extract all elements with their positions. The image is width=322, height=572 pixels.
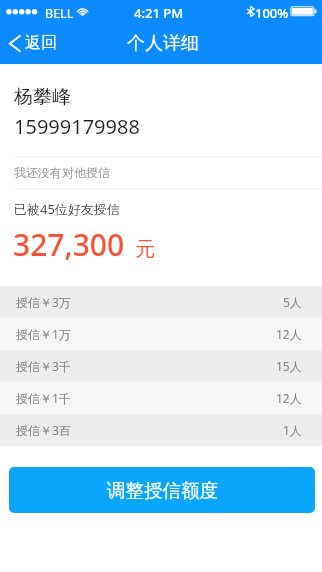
staticText: 327,300: [13, 224, 125, 265]
staticText: 授信￥3万: [16, 294, 71, 310]
staticText: 杨攀峰: [14, 85, 71, 109]
staticText: 已被45位好友授信: [14, 200, 120, 218]
staticText: 12人: [276, 390, 302, 406]
staticText: 12人: [276, 326, 302, 342]
staticText: 1人: [283, 422, 302, 438]
staticText: 返回: [25, 33, 57, 53]
staticText: 个人详细: [127, 32, 199, 55]
button[interactable]: 授信￥1万: [0, 318, 322, 350]
button[interactable]: 返回: [0, 22, 69, 64]
button[interactable]: 调整授信额度: [9, 467, 315, 513]
staticText: 授信￥1千: [16, 390, 71, 406]
staticText: 15999179988: [14, 113, 140, 140]
staticText: 5人: [283, 294, 302, 310]
button[interactable]: 授信￥3千: [0, 350, 322, 382]
staticText: 授信￥3百: [16, 422, 71, 438]
staticText: 我还没有对他授信: [14, 165, 110, 180]
button[interactable]: 授信￥1千: [0, 382, 322, 414]
staticText: 15人: [276, 358, 302, 374]
button[interactable]: 授信￥3万: [0, 286, 322, 318]
staticText: 元: [135, 237, 155, 262]
staticText: 授信￥3千: [16, 358, 71, 374]
staticText: 调整授信额度: [107, 479, 218, 502]
staticText: 100%: [255, 4, 289, 22]
staticText: BELL: [45, 5, 74, 22]
button[interactable]: 授信￥3百: [0, 414, 322, 446]
staticText: 授信￥1万: [16, 326, 71, 342]
staticText: 4:21 PM: [134, 4, 184, 22]
